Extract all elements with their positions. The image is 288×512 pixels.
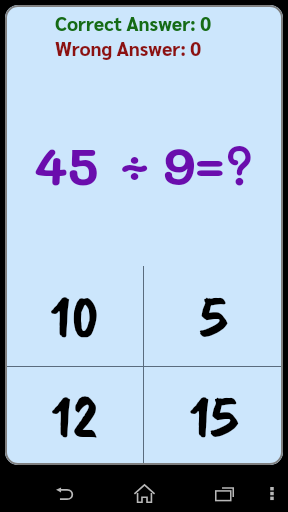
staticText: ÷ [119, 129, 149, 198]
button[interactable]: 5 [144, 266, 283, 366]
staticText: Correct Answer: 0 [55, 11, 212, 36]
button[interactable]: 10 [5, 266, 143, 366]
staticText: 45 [34, 129, 99, 198]
staticText: 10 [50, 278, 99, 355]
staticText: Wrong Answer: 0 [55, 36, 202, 61]
staticText: 5 [200, 278, 227, 355]
button[interactable]: 12 [5, 367, 143, 465]
button[interactable]: 15 [144, 367, 283, 465]
button[interactable]: More options [255, 475, 288, 512]
staticText: 15 [189, 378, 238, 455]
button[interactable]: Home [122, 475, 166, 512]
button[interactable]: Recent apps [202, 475, 246, 512]
button[interactable]: Back [43, 475, 87, 512]
staticText: 12 [51, 378, 98, 455]
staticText: 9=? [163, 129, 254, 198]
